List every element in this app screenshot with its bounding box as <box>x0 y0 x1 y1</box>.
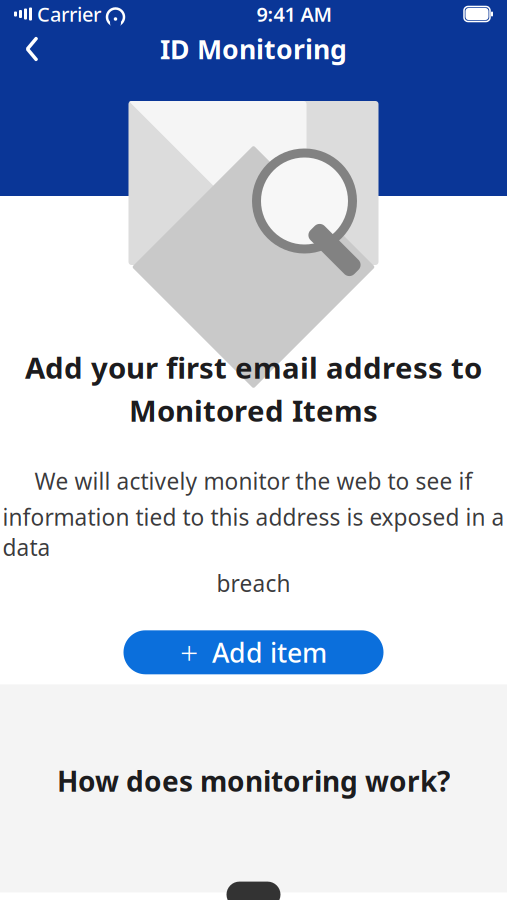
staticText: breach <box>216 568 290 598</box>
staticText: Carrier <box>37 1 101 27</box>
staticText: Add item <box>212 635 327 670</box>
staticText: Monitored Items <box>129 391 378 430</box>
button[interactable]: Back <box>10 29 54 69</box>
staticText: How does monitoring work? <box>57 762 450 800</box>
staticText: + <box>180 631 198 674</box>
staticText: information tied to this address is expo… <box>2 502 504 562</box>
staticText: ID Monitoring <box>160 31 347 67</box>
staticText: 9:41 AM <box>256 1 332 27</box>
staticText: We will actively monitor the web to see … <box>34 466 472 496</box>
staticText: Add your first email address to <box>25 348 482 387</box>
button[interactable]: + <box>123 630 383 674</box>
